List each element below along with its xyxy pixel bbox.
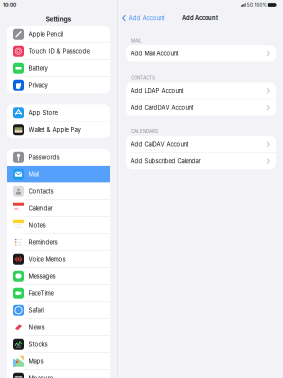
staticText: Measure — [28, 375, 52, 378]
button[interactable]: Add LDAP Account — [126, 83, 276, 99]
staticText: News — [28, 324, 44, 331]
staticText: Calendar — [28, 205, 52, 212]
staticText: Wallet & Apple Pay — [28, 126, 80, 133]
button[interactable]: Wallet & Apple Pay — [7, 121, 110, 138]
staticText: Apple Pencil — [28, 31, 62, 38]
button[interactable]: Touch ID & Passcode — [7, 43, 110, 59]
staticText: Mail — [28, 171, 38, 178]
button[interactable]: Add Subscribed Calendar — [126, 153, 276, 169]
staticText: Add CardDAV Account — [130, 104, 193, 111]
staticText: 5G — [247, 2, 253, 8]
button[interactable]: Stocks — [7, 336, 110, 352]
staticText: Contacts — [28, 188, 53, 195]
button[interactable]: App Store — [7, 104, 110, 121]
staticText: Add Mail Account — [130, 50, 178, 57]
staticText: Add Subscribed Calendar — [130, 157, 200, 165]
staticText: CALENDARS — [131, 128, 158, 134]
staticText: 10:00 — [3, 2, 16, 8]
button[interactable]: Add CalDAV Account — [126, 136, 276, 152]
button[interactable]: Passwords — [7, 149, 110, 165]
staticText: MAIL — [131, 38, 142, 43]
button[interactable]: Mail — [7, 166, 110, 182]
button[interactable]: Calendar — [7, 200, 110, 216]
button[interactable]: Messages — [7, 268, 110, 284]
button[interactable]: Battery — [7, 60, 110, 76]
button[interactable]: Apple Pencil — [7, 26, 110, 42]
staticText: Add CalDAV Account — [130, 141, 188, 148]
button[interactable]: Add CardDAV Account — [126, 99, 276, 116]
button[interactable]: Maps — [7, 353, 110, 369]
button[interactable]: Contacts — [7, 183, 110, 199]
staticText: Add LDAP Account — [130, 87, 183, 94]
staticText: Add Account — [128, 14, 164, 22]
staticText: 100% — [254, 2, 266, 8]
staticText: Add Account — [182, 14, 218, 21]
staticText: Stocks — [28, 341, 47, 348]
staticText: Privacy — [28, 82, 47, 89]
staticText: App Store — [28, 109, 57, 116]
staticText: Maps — [28, 358, 43, 365]
staticText: Battery — [28, 65, 47, 72]
button[interactable]: Add Account — [122, 11, 164, 25]
button[interactable]: Voice Memos — [7, 251, 110, 267]
staticText: Safari — [28, 307, 43, 314]
staticText: Passwords — [28, 154, 59, 161]
staticText: Touch ID & Passcode — [28, 48, 89, 55]
button[interactable]: Add Mail Account — [126, 45, 276, 62]
staticText: Messages — [28, 273, 55, 280]
button[interactable]: Privacy — [7, 77, 110, 93]
staticText: Notes — [28, 222, 45, 229]
staticText: FaceTime — [28, 290, 53, 297]
button[interactable]: Notes — [7, 217, 110, 233]
button[interactable]: Safari — [7, 302, 110, 318]
button[interactable]: Measure — [7, 370, 110, 378]
button[interactable]: Reminders — [7, 234, 110, 250]
button[interactable]: News — [7, 319, 110, 335]
staticText: Reminders — [28, 239, 57, 246]
staticText: Voice Memos — [28, 256, 65, 263]
staticText: CONTACTS — [131, 75, 155, 80]
button[interactable]: FaceTime — [7, 285, 110, 301]
staticText: Settings — [45, 15, 71, 23]
